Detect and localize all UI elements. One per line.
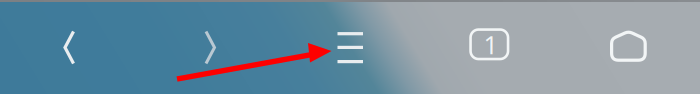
button[interactable]: Back: [0, 0, 700, 94]
button[interactable]: Forward: [0, 0, 700, 94]
button[interactable]: Menu: [0, 0, 700, 94]
button[interactable]: Tabs: [0, 0, 700, 94]
staticText: 1: [483, 27, 497, 61]
button[interactable]: Home: [0, 0, 700, 94]
